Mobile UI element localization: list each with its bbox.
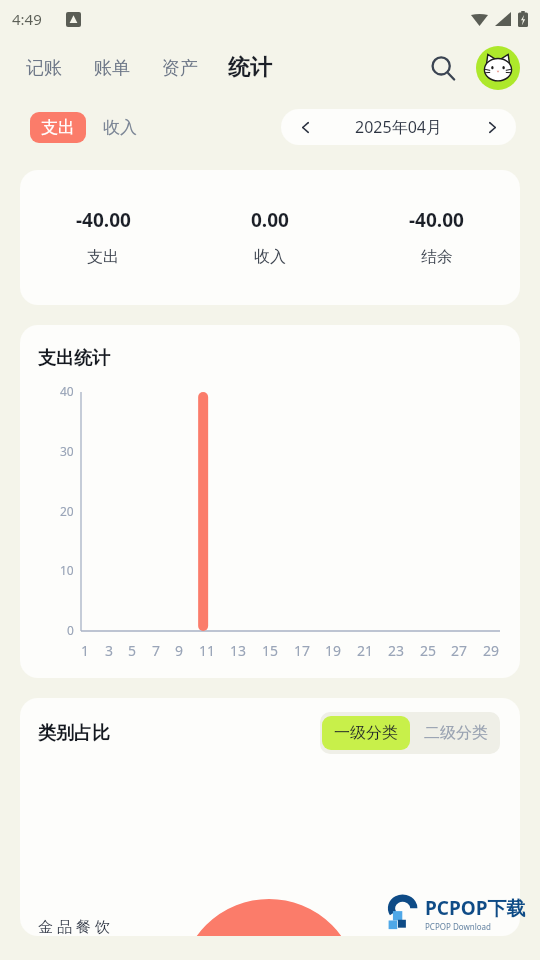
staticText: 资产 [162, 57, 198, 80]
staticText: 支出 [87, 247, 119, 267]
staticText: 20 [60, 503, 74, 519]
staticText: 支出 [41, 117, 75, 138]
button[interactable]: 资产 [160, 53, 200, 84]
staticText: 11 [199, 641, 216, 660]
staticText: 10 [60, 562, 74, 578]
staticText: 2025年04月 [329, 116, 468, 138]
staticText: 3 [105, 641, 114, 660]
button[interactable]: -40.00 [20, 170, 520, 305]
button[interactable]: 二级分类 [412, 714, 500, 752]
staticText: 4:49 [12, 9, 42, 29]
staticText: 23 [388, 641, 405, 660]
button[interactable]: Profile [476, 46, 520, 90]
staticText: 30 [60, 443, 74, 459]
staticText: PCPOP Download [425, 921, 491, 932]
button[interactable]: 记账 [24, 53, 64, 84]
button[interactable]: Previous month [281, 109, 516, 145]
staticText: 25 [420, 641, 437, 660]
staticText: 21 [357, 641, 374, 660]
button[interactable]: 类别占比 [20, 698, 520, 936]
staticText: PCPOP下载 [425, 895, 526, 921]
button[interactable]: Next month [468, 109, 516, 145]
staticText: 二级分类 [424, 723, 488, 743]
staticText: 支出统计 [38, 347, 110, 370]
button[interactable]: 一级分类 [322, 716, 410, 750]
staticText: 1 [81, 641, 90, 660]
staticText: 5 [128, 641, 137, 660]
staticText: 40 [60, 383, 74, 399]
staticText: 27 [451, 641, 468, 660]
staticText: 类别占比 [38, 722, 110, 745]
staticText: 9 [175, 641, 184, 660]
staticText: 记账 [26, 57, 62, 80]
staticText: -40.00 [409, 207, 464, 233]
button[interactable]: 收入 [98, 112, 142, 143]
button[interactable]: Previous month [281, 109, 329, 145]
button[interactable]: 支出统计 [20, 325, 520, 678]
button[interactable]: Search [422, 47, 464, 89]
staticText: 0.00 [251, 207, 289, 233]
button[interactable]: 统计 [226, 50, 274, 86]
staticText: 29 [483, 641, 500, 660]
staticText: 统计 [228, 54, 272, 82]
button[interactable]: 支出 [30, 112, 86, 143]
staticText: 一级分类 [334, 723, 398, 743]
staticText: 15 [262, 641, 279, 660]
staticText: 17 [294, 641, 311, 660]
staticText: 收入 [254, 247, 286, 267]
staticText: 7 [152, 641, 161, 660]
staticText: -40.00 [76, 207, 131, 233]
staticText: 账单 [94, 57, 130, 80]
staticText: 收入 [103, 117, 137, 138]
button[interactable]: 账单 [92, 53, 132, 84]
staticText: 19 [325, 641, 342, 660]
staticText: 13 [230, 641, 247, 660]
staticText: 0 [67, 622, 74, 638]
staticText: 结余 [421, 247, 453, 267]
staticText: 金 品 餐 饮 [38, 916, 110, 936]
